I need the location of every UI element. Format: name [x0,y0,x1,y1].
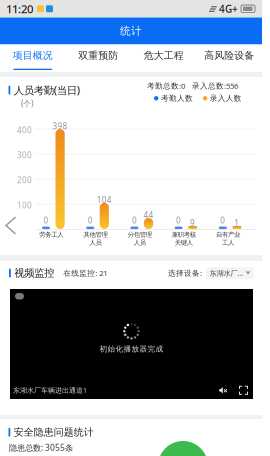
staticText: 考勤总数:0 [147,80,185,91]
staticText: 项目概况 [13,49,53,62]
staticText: 9 [190,217,195,228]
staticText: 11:20 [6,1,33,16]
staticText: 400 [17,125,32,135]
staticText: 危大工程 [144,49,184,62]
staticText: 隐患总数: 3055条 [9,442,73,453]
staticText: 300 [17,150,32,161]
staticText: 统计 [120,24,142,38]
button[interactable]: 高风险设备 [196,44,262,72]
button[interactable]: Full screen [239,386,248,395]
staticText: 0 [43,215,48,226]
staticText: 100 [17,200,32,211]
staticText: 200 [17,175,32,186]
staticText: (个) [21,98,33,109]
staticText: 4G+ [219,2,238,15]
staticText: 0 [176,215,181,226]
staticText: 录入人数 [210,93,242,103]
button[interactable]: 东湖水厂… [206,267,254,279]
staticText: 安全隐患问题统计 [14,426,94,438]
button[interactable]: 危大工程 [131,44,196,72]
staticText: 0 [220,215,225,226]
staticText: 考勤人数 [161,93,193,103]
staticText: 初始化播放器完成 [99,344,163,354]
staticText: 选择设备: [168,268,202,278]
staticText: 人员考勤(当日) [14,83,80,97]
button[interactable]: 项目概况 [0,44,65,72]
staticText: 东湖水厂… [209,268,243,278]
staticText: 其他管理 人员 [83,230,107,247]
button[interactable]: Mute [219,386,228,395]
staticText: 东湖水厂车辆进出通道1 [13,386,87,395]
staticText: 分包管理 人员 [127,230,151,247]
button[interactable]: Previous category [3,214,19,237]
staticText: 1 [234,217,239,228]
staticText: 高风险设备 [204,49,254,62]
staticText: 0 [132,215,137,226]
staticText: 双重预防 [78,49,118,62]
staticText: 视频监控 [14,266,54,279]
staticText: 兼职考核 关键人 [172,230,196,247]
staticText: 劳务工人 [39,230,63,239]
staticText: 0 [88,215,93,226]
button[interactable]: 双重预防 [65,44,131,72]
staticText: 在线监控: 21 [63,268,107,278]
staticText: 录入总数:556 [192,80,238,91]
staticText: 自有产业 工人 [216,230,240,247]
staticText: 44 [143,209,153,220]
staticText: 398 [52,121,67,131]
staticText: 104 [97,194,112,205]
